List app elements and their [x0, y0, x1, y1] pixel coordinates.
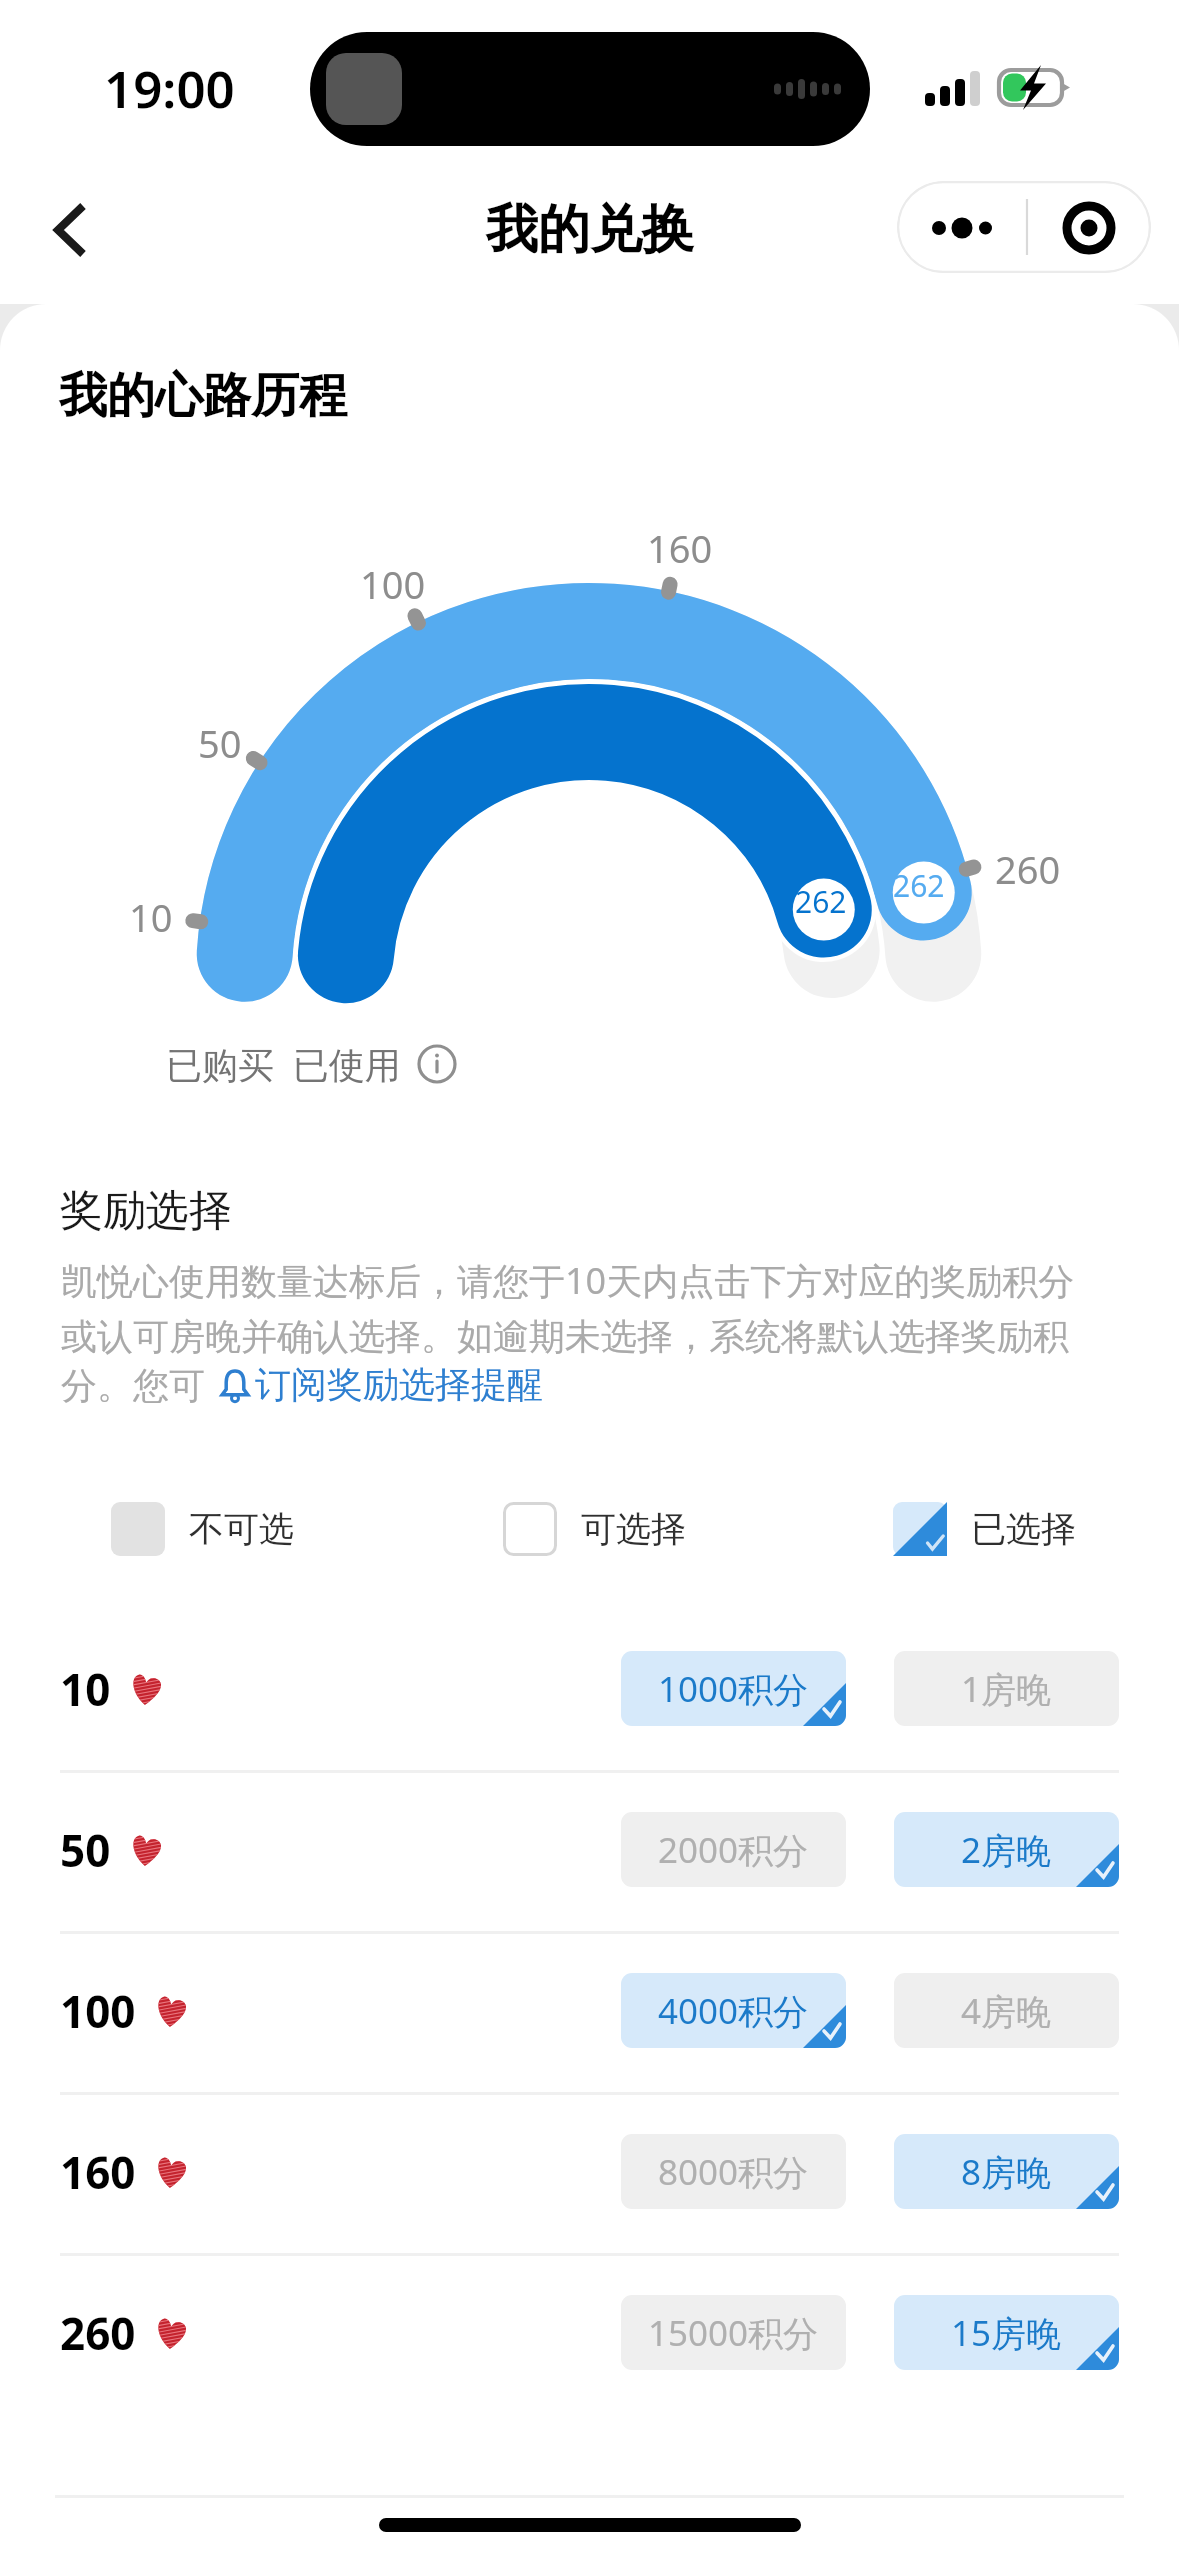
button[interactable]: 订阅奖励选择提醒	[215, 1362, 543, 1407]
button[interactable]: 1房晚	[894, 1651, 1119, 1726]
staticText: 160	[60, 2142, 136, 2202]
button[interactable]: 2房晚	[894, 1812, 1119, 1887]
staticText: 8000积分	[658, 2148, 809, 2196]
staticText: 可选择	[581, 1507, 686, 1551]
staticText: 262	[893, 865, 945, 906]
staticText: 订阅奖励选择提醒	[255, 1362, 543, 1407]
staticText: 50	[60, 1820, 111, 1880]
button[interactable]: 4000积分	[621, 1973, 846, 2048]
button[interactable]: 8000积分	[621, 2134, 846, 2209]
staticText: 已选择	[971, 1507, 1076, 1551]
staticText: 260	[995, 843, 1061, 895]
staticText: 1房晚	[961, 1665, 1052, 1713]
staticText: 100	[60, 1981, 136, 2041]
staticText: 我的心路历程	[59, 366, 347, 426]
staticText: 1000积分	[658, 1665, 809, 1713]
button[interactable]: 4房晚	[894, 1973, 1119, 2048]
button[interactable]: 1000积分	[621, 1651, 846, 1726]
staticText: 我的兑换	[486, 197, 694, 263]
staticText: 4房晚	[961, 1987, 1052, 2035]
staticText: 不可选	[189, 1507, 294, 1551]
staticText: 4000积分	[658, 1987, 809, 2035]
staticText: 260	[60, 2303, 136, 2363]
staticText: 已购买 已使用	[166, 1040, 401, 1089]
button[interactable]: 8房晚	[894, 2134, 1119, 2209]
staticText: 奖励选择	[60, 1184, 232, 1238]
staticText: 8房晚	[961, 2148, 1052, 2196]
staticText: 10	[129, 891, 173, 943]
staticText: 2000积分	[658, 1826, 809, 1874]
staticText: 262	[795, 881, 847, 922]
button[interactable]: 15000积分	[621, 2295, 846, 2370]
button[interactable]: Back	[28, 188, 112, 272]
staticText: 分。您可	[61, 1360, 215, 1409]
button[interactable]: Close	[1027, 181, 1151, 273]
staticText: 15房晚	[951, 2309, 1062, 2357]
staticText: 100	[360, 558, 426, 610]
button[interactable]: More options	[897, 181, 1027, 273]
staticText: 19:00	[104, 53, 235, 122]
button[interactable]: 2000积分	[621, 1812, 846, 1887]
staticText: 50	[198, 717, 242, 769]
staticText: 凯悦心使用数量达标后，请您于10天内点击下方对应的奖励积分或认可房晚并确认选择。…	[61, 1256, 1099, 1360]
button[interactable]: 15房晚	[894, 2295, 1119, 2370]
staticText: 160	[647, 522, 713, 574]
staticText: 2房晚	[961, 1826, 1052, 1874]
staticText: 15000积分	[648, 2309, 819, 2357]
staticText: 10	[60, 1659, 111, 1719]
